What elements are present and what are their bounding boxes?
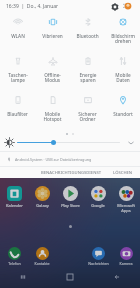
staticText: LÖSCHEN xyxy=(113,170,133,176)
staticText: Blaufilter xyxy=(7,111,28,117)
button[interactable]: Energie sparen xyxy=(70,53,105,92)
button[interactable]: Startbildschirm xyxy=(46,268,93,286)
button[interactable]: Nachrichten xyxy=(84,247,112,266)
button[interactable]: Kamera xyxy=(112,247,140,266)
button[interactable]: Bildschirm drehen xyxy=(105,14,140,53)
staticText: Energie sparen xyxy=(79,72,97,84)
staticText: Play Store xyxy=(61,203,80,208)
staticText: Sicherer Ordner xyxy=(78,111,97,123)
button[interactable]: Mobile Hotspot xyxy=(35,92,70,131)
button[interactable]: Vibrieren xyxy=(35,14,70,53)
button[interactable]: Google xyxy=(84,186,112,208)
staticText: Bluetooth xyxy=(76,33,99,39)
button[interactable]: Blaufilter xyxy=(0,92,35,131)
button[interactable]: Taschen- lampe xyxy=(0,53,35,92)
button[interactable]: Zurück xyxy=(93,268,140,286)
button[interactable]: Telefon xyxy=(0,247,28,266)
button[interactable]: BENACHRICHTIGUNGSDIENST xyxy=(38,168,105,178)
staticText: Bildschirm drehen xyxy=(111,33,135,45)
staticText: Google xyxy=(91,203,105,208)
staticText: Galaxy xyxy=(36,203,49,208)
staticText: Microsoft Apps xyxy=(117,203,135,213)
button[interactable]: LÖSCHEN xyxy=(110,168,136,178)
button[interactable]: Sicherer Ordner xyxy=(70,92,105,131)
staticText: Offline- Modus xyxy=(44,72,61,84)
staticText: Standort xyxy=(113,111,133,117)
button[interactable]: Kontakte xyxy=(28,247,56,266)
button[interactable]: WLAN xyxy=(0,14,35,53)
button[interactable]: Bluetooth xyxy=(70,14,105,53)
button[interactable]: Offline- Modus xyxy=(35,53,70,92)
staticText: Mobile Hotspot xyxy=(43,111,62,123)
button[interactable]: Kalender xyxy=(0,186,28,208)
staticText: 16:39 | Do., 4. Januar xyxy=(6,3,59,10)
staticText: WLAN xyxy=(11,33,25,39)
staticText: Android-System · USB zur Dateiübertragun… xyxy=(15,157,92,162)
button[interactable]: Letzte Apps xyxy=(0,268,46,286)
staticText: BENACHRICHTIGUNGSDIENST xyxy=(41,170,102,176)
staticText: Kamera xyxy=(119,261,133,266)
button[interactable]: Galaxy xyxy=(28,186,56,208)
staticText: Kalender xyxy=(6,203,23,208)
button[interactable]: Standort xyxy=(105,92,140,131)
staticText: Nachrichten xyxy=(88,261,109,266)
button[interactable]: Play Store xyxy=(56,186,84,208)
staticText: Kontakte xyxy=(34,261,50,266)
button[interactable]: Einstellungen xyxy=(108,0,121,13)
button[interactable]: Nutzerprofil xyxy=(121,0,134,13)
button[interactable]: Mehr anzeigen xyxy=(126,138,135,147)
staticText: Taschen- lampe xyxy=(8,72,28,84)
staticText: Telefon xyxy=(8,261,21,266)
button[interactable]: Mobile Daten xyxy=(105,53,140,92)
button[interactable]: Microsoft Apps xyxy=(112,186,140,213)
staticText: Vibrieren xyxy=(42,33,63,39)
staticText: Mobile Daten xyxy=(115,72,131,84)
